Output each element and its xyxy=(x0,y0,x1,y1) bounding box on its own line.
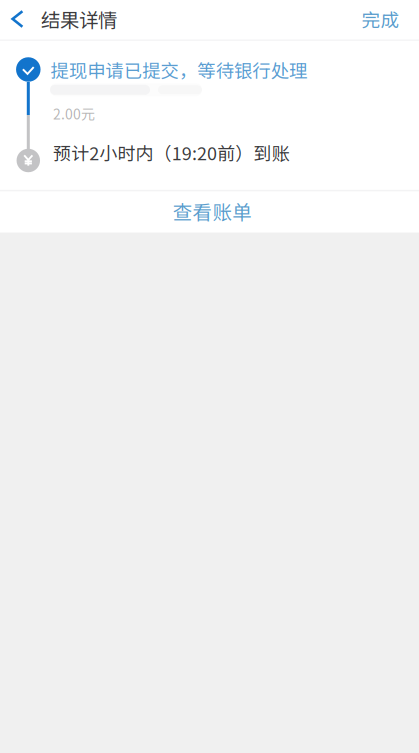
staticText: 结果详情 xyxy=(41,5,117,33)
staticText: 2.00元 xyxy=(53,103,95,124)
button[interactable]: 完成 xyxy=(352,0,408,38)
staticText: 预计2小时内（19:20前）到账 xyxy=(53,139,289,166)
staticText: 提现申请已提交，等待银行处理 xyxy=(50,56,307,83)
staticText: 完成 xyxy=(361,5,399,32)
button[interactable]: 查看账单 xyxy=(2,190,419,232)
button[interactable]: 返回 xyxy=(0,0,36,38)
staticText: 查看账单 xyxy=(173,197,251,225)
